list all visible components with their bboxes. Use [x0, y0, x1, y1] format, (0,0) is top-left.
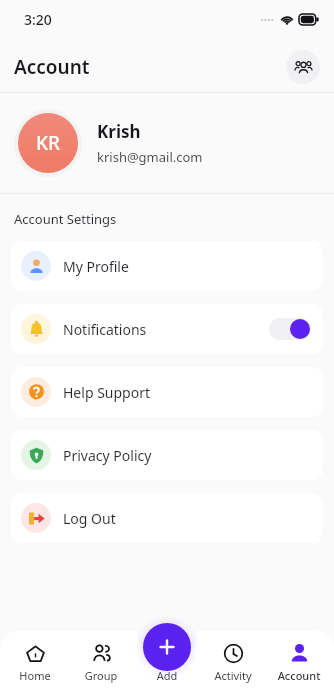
staticText: Krish [97, 120, 141, 143]
button[interactable]: KR [0, 93, 334, 193]
staticText: Notifications [63, 320, 147, 339]
button[interactable]: Add [136, 641, 198, 685]
button[interactable]: My Profile [11, 241, 323, 291]
staticText: Activity [202, 668, 264, 683]
button[interactable]: Notifications toggle [269, 318, 311, 340]
staticText: 3:20 [24, 10, 52, 29]
button[interactable]: Privacy Policy [11, 430, 323, 480]
button[interactable]: Group [70, 641, 132, 685]
staticText: Privacy Policy [63, 446, 152, 465]
staticText: Group [70, 668, 132, 683]
staticText: Add [136, 668, 198, 683]
staticText: My Profile [63, 257, 129, 276]
button[interactable]: Groups [286, 50, 320, 84]
button[interactable]: Activity [202, 641, 264, 685]
staticText: krish@gmail.com [97, 148, 203, 166]
staticText: Account [268, 668, 330, 683]
staticText: KR [36, 130, 61, 156]
staticText: Log Out [63, 509, 116, 528]
staticText: Account Settings [14, 210, 117, 228]
staticText: Home [4, 668, 66, 683]
button[interactable]: Home [4, 641, 66, 685]
staticText: Help Support [63, 383, 150, 402]
button[interactable]: Account [268, 641, 330, 685]
button[interactable]: Add [143, 623, 191, 671]
button[interactable]: Log Out [11, 493, 323, 543]
button[interactable]: Notifications [11, 304, 323, 354]
staticText: Account [14, 54, 90, 80]
button[interactable]: Help Support [11, 367, 323, 417]
